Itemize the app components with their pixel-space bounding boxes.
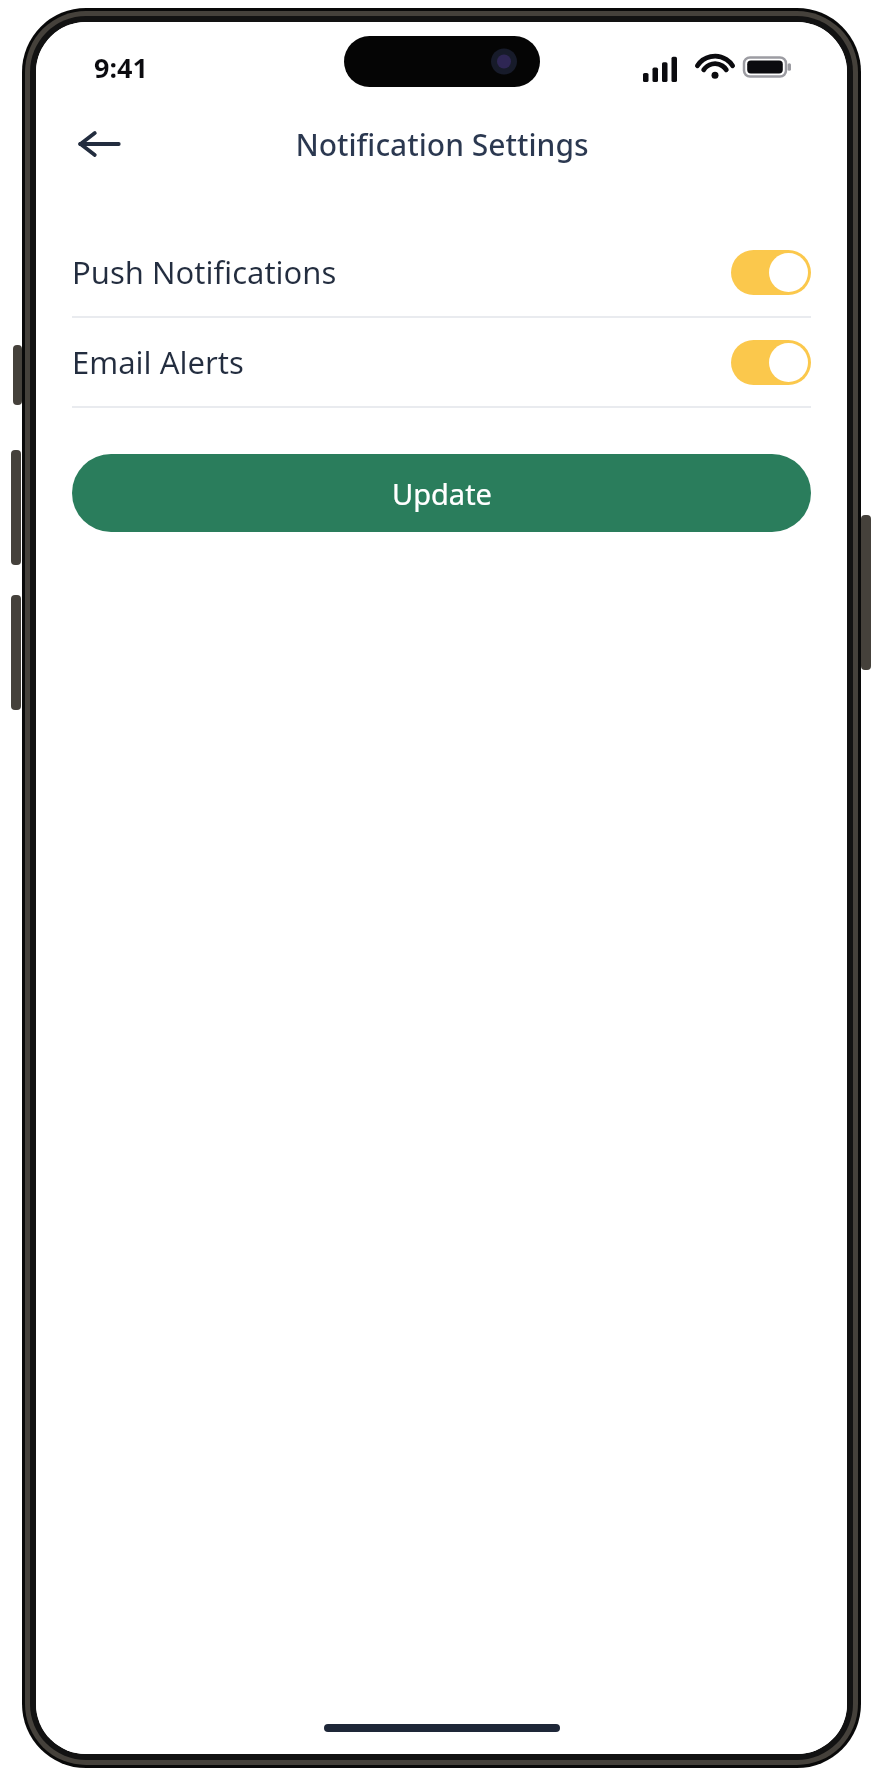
button[interactable]: Email Alerts (36, 318, 847, 406)
button[interactable]: Toggle, on (731, 250, 811, 295)
button[interactable]: Update (72, 454, 811, 532)
button[interactable]: Toggle, on (731, 340, 811, 385)
button[interactable]: Push Notifications (36, 228, 847, 316)
staticText: Push Notifications (72, 251, 731, 293)
staticText: Email Alerts (72, 341, 731, 383)
staticText: 9:41 (94, 49, 148, 86)
staticText: Update (392, 474, 492, 513)
staticText: Notification Settings (295, 124, 589, 165)
button[interactable]: Back (70, 115, 128, 173)
